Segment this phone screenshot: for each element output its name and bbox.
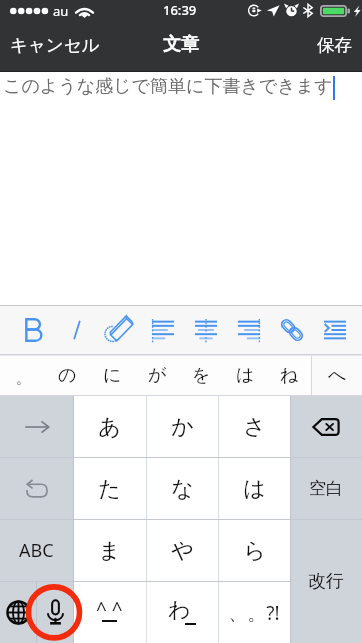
button[interactable]: 文章 — [159, 30, 203, 59]
button[interactable]: わ — [146, 582, 218, 643]
staticText: が — [148, 364, 167, 387]
button[interactable]: Link — [270, 305, 313, 355]
staticText: ね — [280, 364, 299, 387]
staticText: た — [98, 475, 121, 503]
button[interactable]: の — [45, 355, 90, 396]
staticText: に — [103, 364, 122, 387]
button[interactable]: 。 — [0, 355, 45, 396]
button[interactable]: は — [223, 355, 267, 396]
staticText: や — [171, 537, 194, 565]
staticText: 16:39 — [163, 1, 197, 19]
staticText: を — [192, 364, 211, 387]
button[interactable]: ^ ^ — [73, 582, 146, 643]
staticText: ら — [243, 537, 266, 565]
button[interactable]: Align left — [141, 305, 184, 355]
button[interactable]: さ — [218, 396, 290, 457]
button[interactable]: た — [73, 458, 146, 519]
staticText: 文章 — [163, 33, 199, 56]
button[interactable]: ね — [267, 355, 311, 396]
staticText: 空白 — [309, 478, 343, 499]
button[interactable]: が — [135, 355, 179, 396]
staticText: か — [171, 413, 194, 441]
staticText: 。 — [16, 370, 30, 388]
button[interactable]: Dictation — [37, 582, 73, 643]
button[interactable]: Switch keyboard — [0, 582, 36, 643]
button[interactable]: 空白 — [290, 458, 362, 519]
staticText: au — [53, 2, 69, 20]
button[interactable]: な — [146, 458, 218, 519]
button[interactable]: Eraser — [98, 305, 141, 355]
button[interactable]: 改行 — [290, 520, 362, 643]
staticText: キャンセル — [10, 34, 100, 56]
button[interactable]: Align right — [227, 305, 270, 355]
staticText: 改行 — [308, 570, 344, 593]
button[interactable]: を — [179, 355, 223, 396]
button[interactable]: か — [146, 396, 218, 457]
staticText: 、。?! — [228, 600, 280, 626]
button[interactable]: あ — [73, 396, 146, 457]
staticText: ^ ^ — [96, 596, 123, 622]
staticText: は — [236, 364, 255, 387]
staticText: さ — [243, 413, 266, 441]
button[interactable]: 保存 — [313, 31, 356, 59]
button[interactable]: Align center — [184, 305, 227, 355]
button[interactable]: ら — [218, 520, 290, 581]
button[interactable]: Undo — [0, 458, 73, 519]
button[interactable]: へ — [312, 355, 362, 396]
button[interactable]: Italic — [55, 305, 98, 355]
staticText: へ — [328, 364, 347, 387]
button[interactable]: Convert — [0, 396, 73, 457]
staticText: な — [171, 475, 194, 503]
button[interactable]: に — [90, 355, 135, 396]
staticText: ABC — [19, 538, 54, 563]
staticText: わ — [168, 596, 191, 624]
button[interactable]: Indent — [313, 305, 356, 355]
staticText: このような感じで簡単に下書きできます — [3, 75, 333, 98]
button[interactable]: 、。?! — [218, 582, 290, 643]
staticText: は — [243, 475, 266, 503]
button[interactable]: Bold — [12, 305, 55, 355]
button[interactable]: ま — [73, 520, 146, 581]
staticText: ま — [98, 537, 121, 565]
staticText: の — [58, 364, 77, 387]
staticText: あ — [98, 413, 121, 441]
staticText: 保存 — [317, 34, 352, 56]
button[interactable]: や — [146, 520, 218, 581]
button[interactable]: Backspace — [290, 396, 362, 457]
button[interactable]: は — [218, 458, 290, 519]
button[interactable]: キャンセル — [6, 31, 104, 59]
button[interactable]: ABC — [0, 520, 73, 581]
